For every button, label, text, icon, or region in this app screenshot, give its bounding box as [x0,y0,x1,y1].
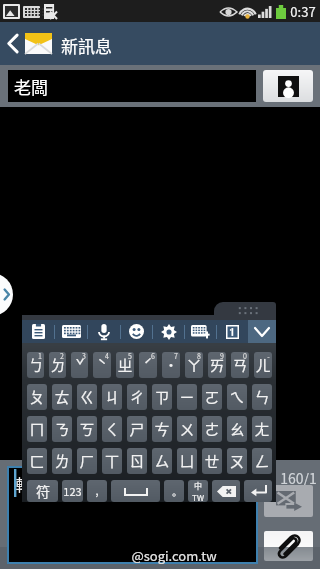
button[interactable]: 老闆 [8,70,256,102]
staticText: 4 [105,352,109,361]
button[interactable]: ˇ [71,352,88,378]
button[interactable]: ㄓ [116,352,134,378]
staticText: 2 [60,352,64,361]
button[interactable]: ㄏ [77,448,97,474]
button[interactable]: ㄋ [52,416,72,442]
button[interactable]: ㄩ [177,448,197,474]
button[interactable]: 轉 [7,466,258,564]
staticText: ㄊ [54,386,70,408]
button[interactable]: Floating keyboard [185,320,216,343]
button[interactable]: ㄥ [252,448,272,474]
button[interactable]: ㄠ [227,416,247,442]
staticText: ㄦ [255,354,271,376]
button[interactable]: ㄛ [202,384,222,410]
button[interactable]: ㄌ [52,448,72,474]
button[interactable]: ， [87,480,107,502]
button[interactable]: ㄙ [152,448,172,474]
button[interactable]: Back [0,22,24,65]
button[interactable]: ㄤ [252,416,272,442]
staticText: 1 [38,352,42,361]
button[interactable]: ㄝ [202,448,222,474]
button[interactable]: 123 [62,480,83,502]
staticText: ㄈ [29,450,45,472]
button[interactable]: Voice input [88,320,120,343]
button[interactable] [111,480,160,502]
button[interactable]: Send message [264,485,313,517]
staticText: 中 [194,480,202,492]
staticText: ㄗ [154,386,170,408]
button[interactable]: ㄈ [27,448,47,474]
staticText: ㄧ [179,386,195,408]
button[interactable]: ˙ [162,352,180,378]
button[interactable]: Language [217,320,248,343]
button[interactable]: ㄚ [185,352,203,378]
staticText: ㄎ [79,418,95,440]
button[interactable]: ㄊ [52,384,72,410]
button[interactable]: ㄆ [27,384,47,410]
button[interactable]: Enter [244,480,272,502]
staticText: 9 [220,352,224,361]
button[interactable]: 中 [188,480,208,502]
button[interactable]: ㄉ [49,352,66,378]
button[interactable]: ㄜ [202,416,222,442]
button[interactable]: ㄣ [252,384,272,410]
button[interactable]: ㄅ [27,352,44,378]
staticText: ㄥ [254,450,270,472]
staticText: ， [92,487,102,501]
button[interactable]: ㄞ [208,352,226,378]
staticText: ㄙ [154,450,170,472]
staticText: 8 [197,352,201,361]
button[interactable]: ˋ [93,352,111,378]
button[interactable]: Keyboard [55,320,87,343]
staticText: ㄆ [29,386,45,408]
staticText: ㄔ [129,386,145,408]
button[interactable]: Backspace [212,480,240,502]
button[interactable]: ㄦ [254,352,272,378]
button[interactable]: 符 [27,480,58,502]
button[interactable]: Move keyboard [214,302,276,318]
button[interactable]: ㄑ [102,416,122,442]
button[interactable]: Hide keyboard [248,320,276,343]
staticText: ㄌ [54,450,70,472]
staticText: ㄡ [229,450,245,472]
staticText: ㄕ [129,418,145,440]
staticText: ㄇ [29,418,45,440]
staticText: ㄋ [54,418,70,440]
staticText: 160/1 [280,468,317,488]
staticText: 新訊息 [61,33,112,58]
button[interactable]: ㄨ [177,416,197,442]
button[interactable]: ㄒ [102,448,122,474]
staticText: ㄠ [229,418,245,440]
button[interactable]: ㄇ [27,416,47,442]
button[interactable]: Attach [264,531,313,561]
button[interactable]: ㄧ [177,384,197,410]
staticText: ㄖ [129,450,145,472]
button[interactable]: ㄘ [152,416,172,442]
button[interactable]: Pick contact [263,70,313,102]
button[interactable]: ˊ [139,352,157,378]
button[interactable]: ㄖ [127,448,147,474]
button[interactable]: Expand side panel [0,273,13,316]
button[interactable]: Clipboard [22,320,54,343]
button[interactable]: Emoji [121,320,152,343]
button[interactable]: ㄕ [127,416,147,442]
button[interactable]: ㄢ [231,352,249,378]
staticText: @sogi.com.tw [131,546,217,565]
staticText: 。 [169,487,179,501]
button[interactable]: ㄍ [77,384,97,410]
staticText: ㄟ [229,386,245,408]
button[interactable]: ㄡ [227,448,247,474]
button[interactable]: Settings [153,320,184,343]
staticText: ㄑ [104,418,120,440]
staticText: 5 [128,352,132,361]
button[interactable]: ㄟ [227,384,247,410]
staticText: ㄉ [50,354,66,376]
staticText: ㄒ [104,450,120,472]
button[interactable]: 。 [164,480,184,502]
staticText: ˇ [75,354,85,376]
button[interactable]: ㄔ [127,384,147,410]
button[interactable]: ㄎ [77,416,97,442]
button[interactable]: ㄗ [152,384,172,410]
button[interactable]: ㄐ [102,384,122,410]
staticText: ㄞ [209,354,225,376]
